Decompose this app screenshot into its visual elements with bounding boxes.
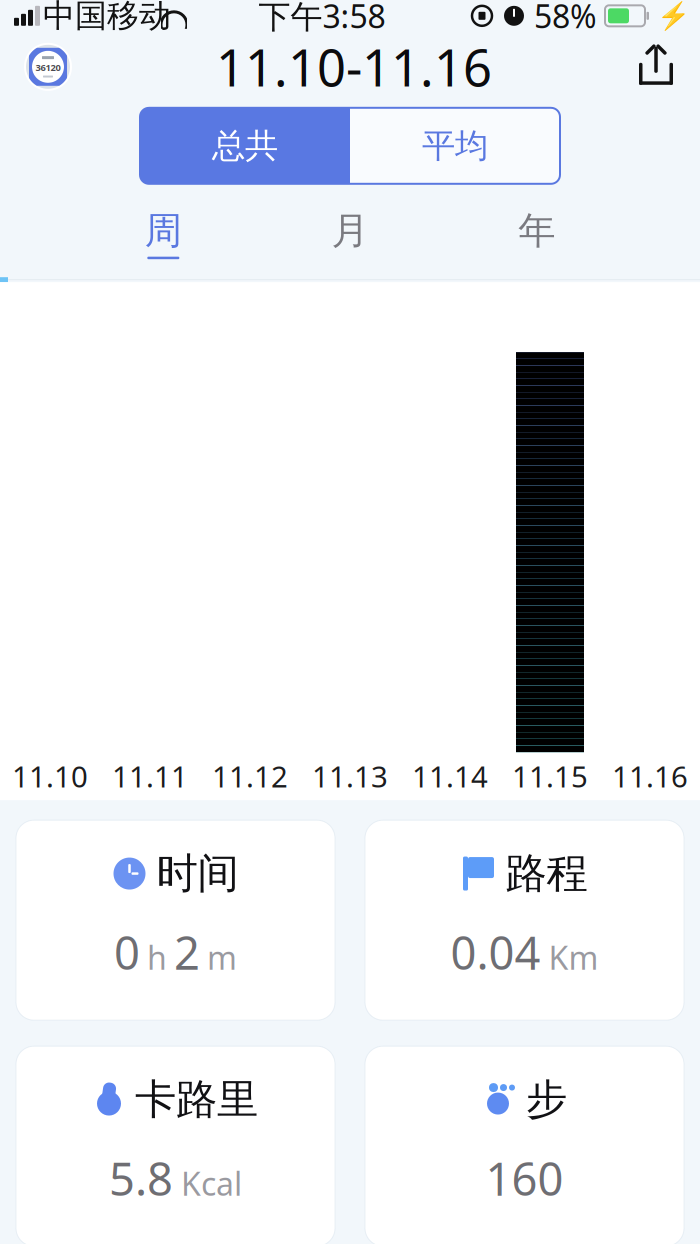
staticText: 11.11 [112, 757, 188, 796]
staticText: 下午3:58 [258, 0, 385, 37]
staticText: 11.15 [512, 757, 588, 796]
staticText: 周 [145, 208, 182, 254]
staticText: Kcal [181, 1162, 242, 1204]
staticText: 58% [534, 0, 597, 37]
staticText: 卡路里 [135, 1074, 258, 1125]
staticText: 11.10-11.16 [216, 33, 492, 100]
staticText: h [147, 936, 167, 978]
staticText: 月 [331, 208, 368, 254]
button[interactable]: 周 [70, 208, 257, 259]
staticText: 0.04 [450, 922, 540, 982]
button[interactable]: 年 [443, 208, 630, 259]
staticText: 11.16 [612, 757, 688, 796]
staticText: 步 [526, 1074, 567, 1125]
staticText: 路程 [505, 848, 587, 899]
staticText: 平均 [422, 125, 488, 166]
button[interactable]: 总共 [140, 108, 350, 184]
staticText: 11.14 [412, 757, 488, 796]
staticText: m [207, 936, 237, 978]
staticText: 中国移动 [43, 0, 171, 35]
button[interactable]: 路程 [365, 820, 684, 1020]
staticText: 0 [114, 922, 140, 982]
staticText: 5.8 [109, 1148, 173, 1208]
button[interactable]: 卡路里 [16, 1046, 335, 1244]
staticText: 36120 [35, 61, 60, 73]
staticText: 11.10 [12, 757, 88, 796]
staticText: 年 [518, 208, 555, 254]
button[interactable]: 时间 [16, 820, 335, 1020]
button[interactable]: 步 [365, 1046, 684, 1244]
staticText: 160 [485, 1148, 563, 1208]
staticText: 时间 [156, 848, 238, 899]
staticText: 总共 [212, 125, 278, 166]
button[interactable]: 活动目标 [0, 37, 72, 97]
staticText: 11.13 [312, 757, 388, 796]
button[interactable]: 月 [257, 208, 443, 259]
staticText: 2 [174, 922, 200, 982]
staticText: Km [548, 936, 598, 978]
button[interactable]: 分享 [636, 39, 700, 95]
button[interactable]: 平均 [350, 108, 560, 184]
staticText: ⚡ [657, 1, 690, 31]
staticText: 11.12 [212, 757, 288, 796]
